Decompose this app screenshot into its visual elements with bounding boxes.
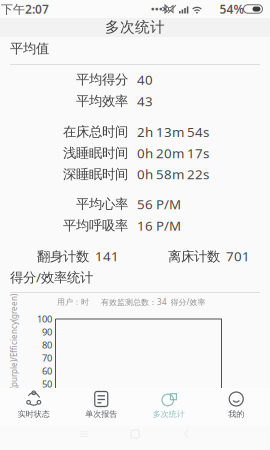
staticText: 多次统计 [153, 409, 185, 419]
staticText: 40 [137, 71, 153, 88]
button[interactable]: 单次报告 [67, 388, 135, 425]
staticText: 16 P/M [137, 217, 181, 234]
staticText: 用户：时 [57, 297, 89, 307]
staticText: 54% [219, 1, 244, 17]
staticText: 43 [137, 92, 153, 110]
staticText: 翻身计数 141 [37, 247, 119, 265]
staticText: 100 [37, 313, 52, 325]
staticText: 多次统计 [105, 18, 165, 36]
staticText: 下午2:07 [1, 1, 49, 17]
staticText: 平均得分 [76, 71, 128, 88]
staticText: 得分/效率 [170, 297, 205, 307]
button[interactable]: 多次统计 [135, 388, 202, 425]
staticText: 有效监测总数：34 [101, 297, 167, 307]
staticText: 56 P/M [137, 195, 181, 213]
staticText: 单次报告 [85, 409, 117, 419]
staticText: 我的 [228, 409, 244, 419]
staticText: 80 [42, 339, 52, 351]
staticText: 70 [42, 352, 52, 364]
staticText: ••• [151, 3, 163, 15]
staticText: 50 [42, 378, 52, 390]
staticText: 0h 20m 17s [137, 144, 209, 162]
button[interactable]: 我的 [202, 388, 270, 425]
staticText: 平均心率 [76, 196, 128, 212]
staticText: 60 [42, 365, 52, 377]
staticText: 平均效率 [76, 93, 128, 109]
staticText: 平均呼吸率 [63, 217, 128, 234]
staticText: 平均值 [10, 40, 49, 57]
staticText: 90 [42, 326, 52, 338]
staticText: 浅睡眠时间 [63, 145, 128, 161]
staticText: 得分/效率统计 [10, 268, 93, 286]
staticText: 实时状态 [18, 409, 50, 419]
staticText: 深睡眠时间 [63, 166, 128, 182]
staticText: Score(purple)/Efficiency(green) [0, 347, 72, 357]
staticText: 0h 58m 22s [137, 165, 209, 183]
staticText: 2h 13m 54s [137, 123, 209, 141]
staticText: 在床总时间 [63, 124, 128, 140]
staticText: 离床计数 701 [168, 247, 250, 265]
button[interactable]: 实时状态 [0, 388, 67, 425]
